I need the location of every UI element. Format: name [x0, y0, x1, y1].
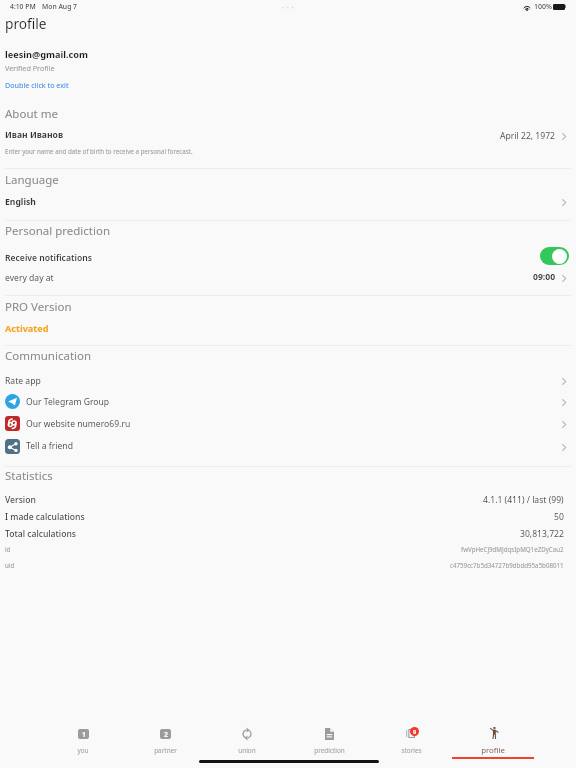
- staticText: Enter your name and date of birth to rec…: [5, 147, 193, 155]
- button[interactable]: [0, 193, 576, 211]
- staticText: fwVpHeCj9dMJdqsIpMQ1eZDyCau2: [461, 545, 564, 553]
- staticText: Personal prediction: [5, 223, 110, 239]
- staticText: 1: [82, 730, 86, 739]
- staticText: Rate app: [5, 375, 41, 387]
- staticText: Activated: [5, 322, 49, 334]
- button[interactable]: profile: [452, 718, 534, 760]
- staticText: 30,813,722: [520, 528, 564, 540]
- staticText: every day at: [5, 272, 54, 284]
- staticText: 2: [164, 730, 168, 739]
- staticText: profile: [5, 14, 47, 33]
- button[interactable]: union: [206, 718, 288, 760]
- staticText: Total calculations: [5, 528, 76, 540]
- button[interactable]: stories: [370, 718, 452, 760]
- staticText: About me: [5, 106, 58, 122]
- staticText: 100%: [534, 2, 552, 12]
- staticText: Version: [5, 494, 36, 506]
- staticText: partner: [154, 746, 177, 755]
- button[interactable]: prediction: [288, 718, 370, 760]
- staticText: Mon Aug 7: [42, 2, 78, 11]
- staticText: 50: [554, 511, 564, 523]
- staticText: Communication: [5, 348, 92, 364]
- staticText: Double click to exit: [5, 80, 69, 90]
- staticText: 4:10 PM: [10, 2, 36, 11]
- staticText: id: [5, 545, 11, 553]
- staticText: I made calculations: [5, 511, 85, 523]
- button[interactable]: [0, 438, 576, 458]
- button[interactable]: [0, 269, 576, 285]
- staticText: 4.1.1 (411) / last (99): [483, 494, 564, 506]
- staticText: Tell a friend: [26, 440, 73, 452]
- button[interactable]: [0, 415, 576, 435]
- staticText: 9: [413, 728, 417, 736]
- staticText: Statistics: [5, 468, 53, 484]
- staticText: stories: [401, 746, 422, 755]
- button[interactable]: [0, 372, 576, 388]
- staticText: Our Telegram Group: [26, 396, 110, 408]
- staticText: PRO Version: [5, 299, 72, 315]
- staticText: uid: [5, 561, 15, 569]
- button[interactable]: [0, 127, 576, 145]
- button[interactable]: Double click to exit: [5, 80, 69, 90]
- button[interactable]: Receive notifications toggle: [540, 247, 569, 265]
- staticText: Our website numero69.ru: [26, 418, 131, 430]
- staticText: prediction: [314, 746, 345, 755]
- staticText: Language: [5, 172, 59, 188]
- staticText: you: [77, 746, 89, 755]
- staticText: profile: [481, 745, 505, 756]
- staticText: c4759cc7b5d34727b9dbdd95a5b08011: [450, 561, 564, 569]
- staticText: English: [5, 196, 36, 208]
- staticText: 09:00: [533, 271, 556, 283]
- staticText: Receive notifications: [5, 252, 92, 264]
- button[interactable]: [0, 393, 576, 413]
- staticText: leesin@gmail.com: [5, 48, 89, 61]
- staticText: Verified Profile: [5, 63, 55, 73]
- staticText: April 22, 1972: [500, 130, 556, 142]
- staticText: union: [238, 746, 256, 755]
- button[interactable]: partner: [124, 718, 206, 760]
- staticText: Иван Иванов: [5, 129, 64, 141]
- button[interactable]: you: [42, 718, 124, 760]
- button[interactable]: [0, 245, 576, 267]
